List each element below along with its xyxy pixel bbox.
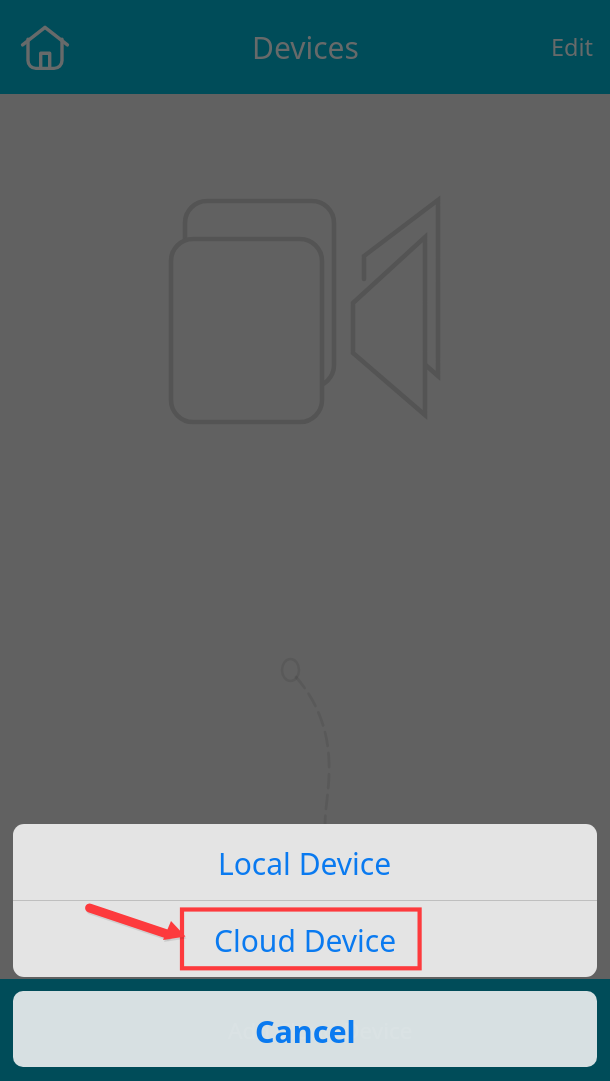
button[interactable]: Edit: [533, 17, 610, 77]
button[interactable]: Cloud Device: [13, 901, 597, 977]
staticText: Devices: [252, 27, 359, 68]
staticText: Add Cloud Device: [228, 1015, 413, 1046]
staticText: Edit: [551, 31, 594, 63]
button[interactable]: Home: [7, 9, 83, 85]
button[interactable]: Add Cloud Device: [13, 991, 597, 1067]
button[interactable]: Local Device: [13, 824, 597, 900]
staticText: Local Device: [218, 843, 392, 884]
staticText: Cloud Device: [214, 920, 397, 961]
staticText: Cancel: [255, 1010, 356, 1052]
